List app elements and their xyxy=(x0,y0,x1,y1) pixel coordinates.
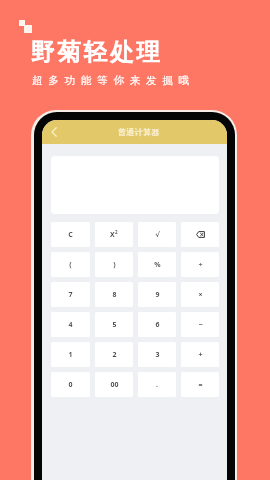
button[interactable]: Equals xyxy=(181,372,219,397)
button[interactable]: Back xyxy=(42,120,66,144)
staticText: 5 xyxy=(112,320,117,330)
button[interactable]: 7 xyxy=(51,282,90,307)
staticText: √ xyxy=(155,231,160,239)
button[interactable]: 4 xyxy=(51,312,90,337)
staticText: 00 xyxy=(110,380,119,390)
button[interactable]: 6 xyxy=(138,312,176,337)
staticText: − xyxy=(198,320,203,330)
staticText: 1 xyxy=(68,350,73,360)
staticText: ( xyxy=(69,260,72,270)
button[interactable]: Backspace xyxy=(181,222,219,247)
staticText: X xyxy=(110,230,115,240)
staticText: 7 xyxy=(68,290,73,300)
staticText: 0 xyxy=(68,380,73,390)
button[interactable]: Divide xyxy=(181,252,219,277)
staticText: 3 xyxy=(155,350,160,360)
staticText: 8 xyxy=(112,290,117,300)
staticText: × xyxy=(198,290,203,300)
staticText: C xyxy=(68,230,73,240)
button[interactable]: Square root xyxy=(138,222,176,247)
staticText: 超多功能等你来发掘哦 xyxy=(29,74,192,87)
staticText: 普通计算器 xyxy=(118,127,160,137)
button[interactable]: 8 xyxy=(95,282,133,307)
button[interactable]: x squared xyxy=(95,222,133,247)
staticText: + xyxy=(198,350,203,360)
button[interactable]: 3 xyxy=(138,342,176,367)
button[interactable]: Plus xyxy=(181,342,219,367)
staticText: 4 xyxy=(68,320,73,330)
button[interactable]: Clear xyxy=(51,222,90,247)
button[interactable]: 5 xyxy=(95,312,133,337)
staticText: 2 xyxy=(115,229,118,235)
button[interactable]: 1 xyxy=(51,342,90,367)
staticText: = xyxy=(198,380,203,390)
staticText: 6 xyxy=(155,320,160,330)
staticText: 野菊轻处理 xyxy=(31,37,163,67)
button[interactable]: 00 xyxy=(95,372,133,397)
staticText: . xyxy=(156,380,158,390)
staticText: 9 xyxy=(155,290,160,300)
button[interactable]: Percent xyxy=(138,252,176,277)
button[interactable]: Left parenthesis xyxy=(51,252,90,277)
button[interactable]: Multiply xyxy=(181,282,219,307)
staticText: ÷ xyxy=(198,260,203,270)
staticText: ) xyxy=(113,260,116,270)
button[interactable]: 9 xyxy=(138,282,176,307)
button[interactable]: Minus xyxy=(181,312,219,337)
button[interactable]: Decimal point xyxy=(138,372,176,397)
button[interactable]: Right parenthesis xyxy=(95,252,133,277)
staticText: 2 xyxy=(112,350,117,360)
staticText: % xyxy=(154,260,161,270)
button[interactable]: 2 xyxy=(95,342,133,367)
button[interactable]: 0 xyxy=(51,372,90,397)
